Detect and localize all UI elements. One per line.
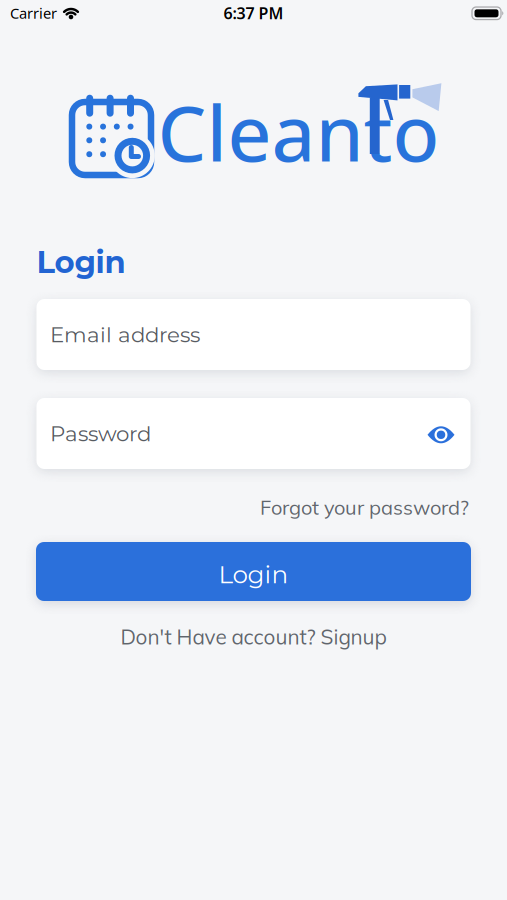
staticText: Login bbox=[36, 243, 125, 281]
staticText: Cleanto bbox=[157, 79, 439, 184]
button[interactable]: Show password bbox=[427, 425, 454, 442]
button[interactable]: Email address bbox=[36, 299, 470, 370]
staticText: Don't Have account? Signup bbox=[120, 624, 386, 650]
button[interactable]: Don't Have account? Signup bbox=[120, 624, 386, 650]
staticText: 6:37 PM bbox=[223, 2, 283, 24]
staticText: Carrier bbox=[10, 3, 57, 23]
staticText: Forgot your password? bbox=[260, 495, 469, 520]
staticText: Login bbox=[218, 559, 288, 589]
button[interactable]: Login bbox=[36, 542, 471, 601]
button[interactable]: Password bbox=[36, 398, 470, 469]
staticText: Email address bbox=[50, 321, 200, 347]
button[interactable]: Forgot your password? bbox=[0, 495, 507, 520]
staticText: Password bbox=[50, 420, 151, 446]
